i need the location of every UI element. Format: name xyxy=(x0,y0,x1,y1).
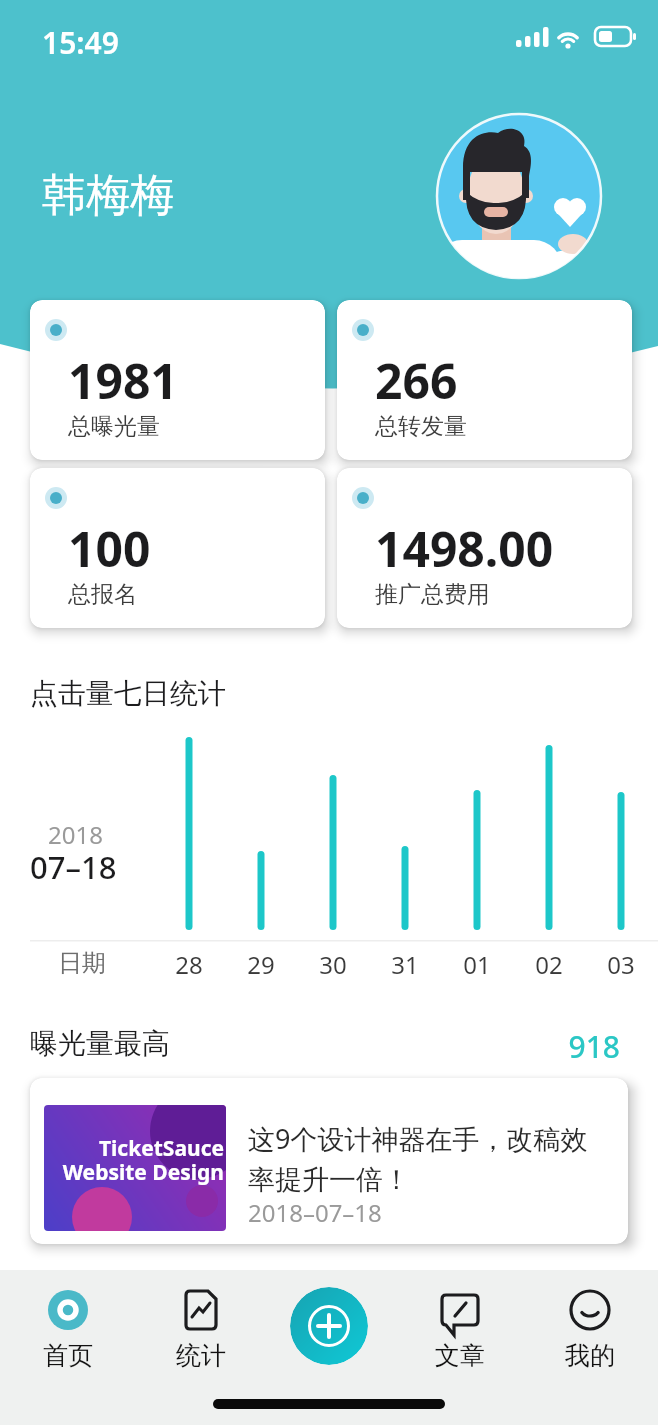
staticText: 29 xyxy=(241,948,281,981)
staticText: Website Design xyxy=(46,1158,224,1187)
staticText: 这9个设计神器在手，改稿效 率提升一倍！ xyxy=(248,1120,588,1197)
staticText: 曝光量最高 xyxy=(30,1026,170,1061)
button[interactable]: 266 xyxy=(337,300,632,460)
staticText: 02 xyxy=(529,948,569,981)
staticText: TicketSauce xyxy=(46,1134,224,1163)
staticText: 文章 xyxy=(435,1340,485,1371)
button[interactable]: TicketSauce xyxy=(30,1078,628,1244)
staticText: 2018–07–18 xyxy=(248,1196,382,1229)
staticText: 总转发量 xyxy=(375,412,467,441)
button[interactable]: 100 xyxy=(30,468,325,628)
staticText: 日期 xyxy=(58,948,106,978)
staticText: 1981 xyxy=(68,348,178,413)
staticText: 28 xyxy=(169,948,209,981)
staticText: 我的 xyxy=(565,1340,615,1371)
staticText: 点击量七日统计 xyxy=(30,676,226,711)
button[interactable]: 我的 xyxy=(550,1284,630,1371)
staticText: 07–18 xyxy=(30,846,117,888)
staticText: 推广总费用 xyxy=(375,580,490,609)
staticText: 01 xyxy=(457,948,497,981)
button[interactable]: 1981 xyxy=(30,300,325,460)
staticText: 2018 xyxy=(48,818,103,851)
button[interactable]: 1498.00 xyxy=(337,468,632,628)
staticText: 266 xyxy=(375,348,458,413)
staticText: 31 xyxy=(385,948,425,981)
staticText: 总曝光量 xyxy=(68,412,160,441)
staticText: 03 xyxy=(601,948,641,981)
button[interactable]: 统计 xyxy=(161,1284,241,1371)
staticText: 1498.00 xyxy=(375,516,554,581)
staticText: 韩梅梅 xyxy=(42,168,174,223)
staticText: 统计 xyxy=(176,1340,226,1371)
staticText: 15:49 xyxy=(42,22,119,63)
staticText: 30 xyxy=(313,948,353,981)
staticText: 总报名 xyxy=(68,580,137,609)
button[interactable] xyxy=(290,1287,368,1365)
button[interactable]: 首页 xyxy=(28,1284,108,1371)
staticText: 918 xyxy=(528,1026,620,1067)
staticText: 首页 xyxy=(43,1340,93,1371)
button[interactable]: 文章 xyxy=(420,1284,500,1371)
staticText: 100 xyxy=(68,516,151,581)
